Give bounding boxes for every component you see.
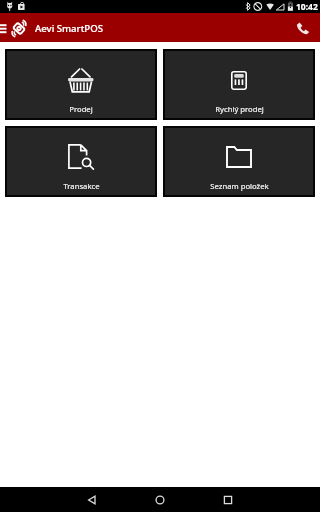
button[interactable]: Menu xyxy=(0,13,9,42)
button[interactable]: Home xyxy=(139,487,181,512)
button[interactable]: Rychlý prodej xyxy=(165,51,313,118)
button[interactable]: Transakce xyxy=(7,128,155,195)
staticText: Prodej xyxy=(69,104,93,114)
staticText: Aevi SmartPOS xyxy=(35,22,103,35)
button[interactable]: Back xyxy=(71,487,113,512)
button[interactable]: Recents xyxy=(207,487,249,512)
staticText: Transakce xyxy=(63,181,100,191)
staticText: Seznam položek xyxy=(210,181,269,191)
button[interactable]: Call xyxy=(292,13,316,42)
staticText: 10:42 xyxy=(296,1,318,13)
button[interactable]: Aevi logo xyxy=(11,18,26,38)
button[interactable]: Seznam položek xyxy=(165,128,313,195)
staticText: Rychlý prodej xyxy=(215,104,264,114)
button[interactable]: Prodej xyxy=(7,51,155,118)
